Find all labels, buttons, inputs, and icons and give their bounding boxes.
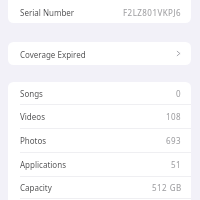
staticText: Capacity [20,182,52,193]
staticText: Applications [20,159,66,170]
staticText: Videos [20,111,45,122]
staticText: Serial Number [20,7,75,18]
staticText: Photos [20,135,47,146]
staticText: 108 [166,111,182,122]
button[interactable]: Photos [8,129,191,153]
button[interactable]: Songs [8,82,191,105]
button[interactable]: Capacity [8,177,191,199]
staticText: 512 GB [152,182,182,193]
button[interactable]: Applications [8,153,191,177]
staticText: Songs [20,88,43,99]
staticText: 0 [176,88,182,99]
staticText: F2LZ801VKPJ6 [123,7,182,18]
staticText: 51 [171,159,182,170]
button[interactable]: Coverage Expired [8,42,191,65]
button[interactable]: Videos [8,105,191,129]
other: Coverage details [177,51,180,57]
staticText: 693 [166,135,182,146]
button[interactable]: Serial Number [8,0,191,23]
staticText: Coverage Expired [20,49,86,60]
